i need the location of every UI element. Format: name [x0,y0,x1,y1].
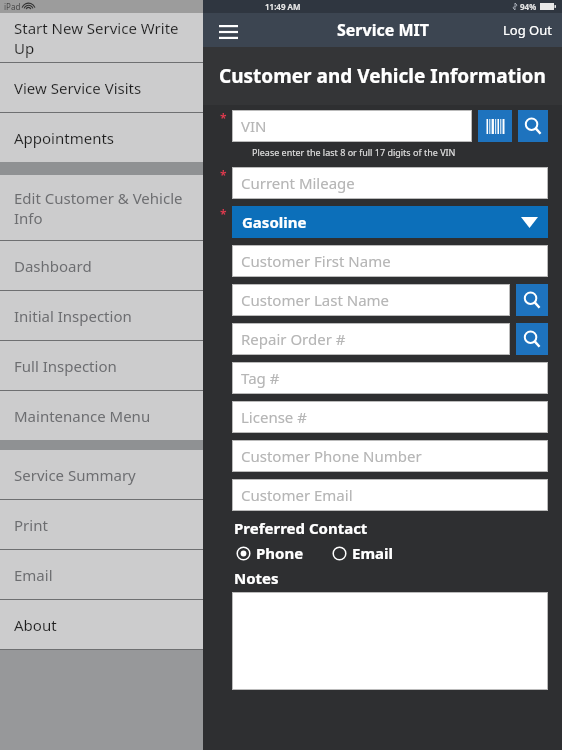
staticText: iPad [4,1,21,12]
staticText: Please enter the last 8 or full 17 digit… [252,146,456,158]
button[interactable]: Repair Order # [233,324,509,354]
staticText: Notes [234,568,279,588]
staticText: Customer Last Name [241,290,390,310]
staticText: About [14,615,57,635]
staticText: View Service Visits [14,78,142,98]
staticText: 11:49 AM [265,1,301,12]
button[interactable]: View Service Visits [0,63,203,112]
button[interactable]: Start New Service Write Up [0,13,203,62]
button[interactable]: About [0,600,203,649]
button[interactable]: Initial Inspection [0,291,203,340]
staticText: Edit Customer & Vehicle Info [14,188,183,228]
button[interactable]: Search VIN [518,110,548,142]
staticText: Service Summary [14,465,136,485]
staticText: Full Inspection [14,356,117,376]
button[interactable]: Log Out [493,16,562,44]
staticText: Print [14,515,48,535]
staticText: Maintenance Menu [14,406,151,426]
button[interactable]: Customer First Name [233,246,547,276]
staticText: License # [241,407,307,427]
staticText: Start New Service Write Up [14,18,195,58]
button[interactable]: Maintenance Menu [0,391,203,440]
staticText: Repair Order # [241,329,346,349]
staticText: VIN [241,116,267,136]
staticText: * [220,167,227,183]
button[interactable]: Menu [213,17,243,43]
staticText: Tag # [241,368,280,388]
button[interactable]: Phone [234,541,306,565]
staticText: Log Out [503,21,552,39]
button[interactable]: Dashboard [0,241,203,290]
button[interactable]: Current Mileage [233,168,547,198]
staticText: Appointments [14,128,115,148]
button[interactable]: VIN [233,111,471,141]
button[interactable]: Edit Customer & Vehicle Info [0,175,203,240]
staticText: Customer and Vehicle Information [219,63,546,89]
button[interactable]: Gasoline [232,206,548,238]
staticText: Email [352,543,393,563]
button[interactable]: License # [233,402,547,432]
button[interactable]: Print [0,500,203,549]
button[interactable]: Service Summary [0,450,203,499]
button[interactable]: Customer Last Name [233,285,509,315]
staticText: * [220,206,227,222]
staticText: * [220,110,227,126]
staticText: Service MIT [337,19,429,41]
staticText: Phone [256,543,304,563]
staticText: Customer Phone Number [241,446,422,466]
button[interactable]: Search customer last name [516,284,548,316]
button[interactable]: Scan barcode [478,110,512,142]
staticText: Gasoline [242,212,307,232]
staticText: Dashboard [14,256,92,276]
staticText: Customer Email [241,485,353,505]
staticText: Current Mileage [241,173,355,193]
button[interactable]: Appointments [0,113,203,162]
staticText: Customer First Name [241,251,391,271]
button[interactable]: Full Inspection [0,341,203,390]
button[interactable]: Customer Email [233,480,547,510]
staticText: 94% [520,1,537,12]
staticText: Preferred Contact [234,518,368,538]
button[interactable]: Email [0,550,203,599]
button[interactable]: Customer Phone Number [233,441,547,471]
staticText: Initial Inspection [14,306,132,326]
button[interactable]: Email [330,541,395,565]
button[interactable]: Search repair order [516,323,548,355]
staticText: Email [14,565,53,585]
button[interactable]: Tag # [233,363,547,393]
